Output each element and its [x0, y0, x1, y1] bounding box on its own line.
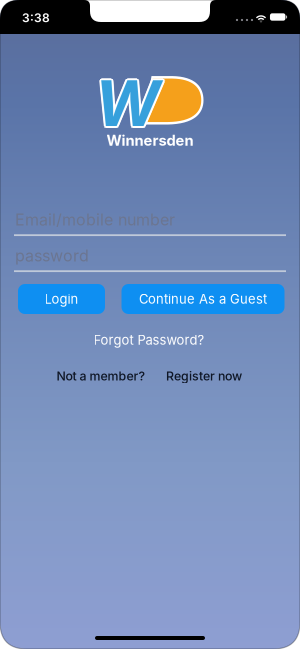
- staticText: 3:38: [22, 11, 50, 25]
- staticText: password: [15, 246, 89, 265]
- button[interactable]: password: [14, 246, 286, 272]
- button[interactable]: Email/mobile number: [14, 210, 286, 236]
- staticText: Login: [44, 291, 78, 307]
- button[interactable]: Login: [18, 284, 105, 314]
- staticText: W: [96, 67, 161, 143]
- staticText: Register now: [166, 368, 242, 383]
- staticText: W: [96, 64, 161, 140]
- staticText: Not a member?: [56, 368, 145, 383]
- button[interactable]: Register now: [166, 368, 242, 383]
- staticText: Continue As a Guest: [139, 291, 267, 307]
- button[interactable]: Forgot Password?: [93, 332, 204, 348]
- staticText: W: [95, 68, 160, 143]
- staticText: Winnersden: [106, 132, 193, 149]
- staticText: W: [93, 67, 158, 143]
- staticText: W: [93, 66, 158, 141]
- staticText: Forgot Password?: [93, 332, 204, 348]
- staticText: W: [95, 64, 160, 139]
- staticText: Email/mobile number: [15, 210, 175, 229]
- staticText: W: [95, 66, 160, 141]
- staticText: W: [97, 66, 162, 141]
- staticText: W: [93, 64, 158, 140]
- button[interactable]: Continue As a Guest: [121, 284, 284, 314]
